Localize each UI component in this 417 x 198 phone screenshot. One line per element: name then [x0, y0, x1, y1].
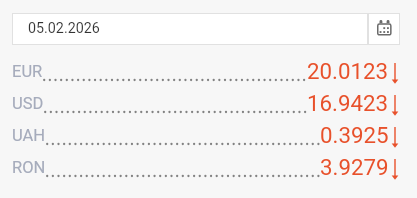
staticText: USD	[12, 94, 44, 113]
other: Down	[389, 87, 401, 119]
staticText: 16.9423	[307, 90, 389, 116]
staticText: 0.3925	[320, 122, 389, 148]
staticText: RON	[12, 158, 46, 177]
other: Down	[389, 119, 401, 151]
button[interactable]: 05.02.2026	[12, 13, 368, 45]
button[interactable]: UAH	[12, 119, 401, 151]
button[interactable]: Pick date	[368, 13, 400, 45]
button[interactable]: USD	[12, 87, 401, 119]
other: Down	[389, 55, 401, 87]
button[interactable]: EUR	[12, 55, 401, 87]
staticText: 20.0123	[307, 58, 389, 84]
staticText: EUR	[12, 62, 43, 81]
other: Down	[389, 151, 401, 183]
staticText: 3.9279	[320, 154, 389, 180]
staticText: 05.02.2026	[28, 20, 100, 37]
button[interactable]: RON	[12, 151, 401, 183]
staticText: UAH	[12, 126, 46, 145]
